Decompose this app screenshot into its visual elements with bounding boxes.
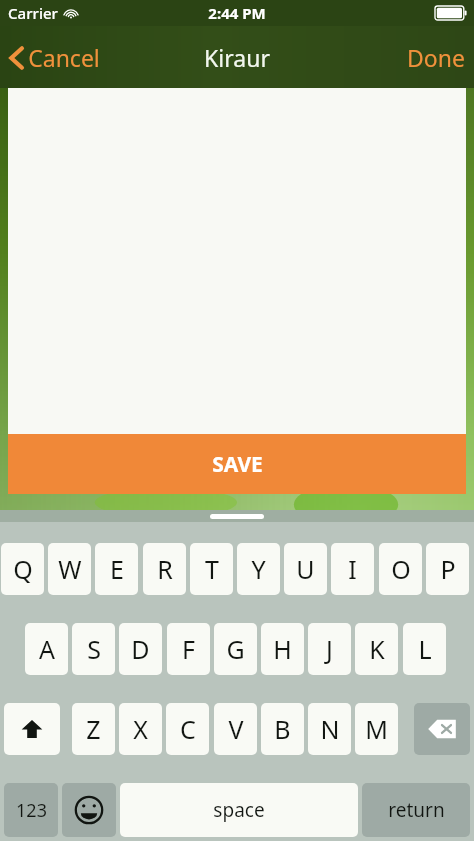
button[interactable]: M [355, 703, 398, 755]
staticText: Done [407, 42, 465, 73]
staticText: H [273, 632, 292, 666]
staticText: Cancel [28, 42, 100, 73]
staticText: D [131, 632, 150, 666]
staticText: Z [86, 712, 101, 746]
button[interactable]: Shift [4, 703, 60, 755]
staticText: X [133, 712, 148, 746]
button[interactable]: F [167, 623, 210, 675]
button[interactable]: O [379, 543, 422, 595]
button[interactable]: space [120, 783, 358, 837]
button[interactable]: G [214, 623, 257, 675]
staticText: P [440, 552, 456, 586]
button[interactable]: N [308, 703, 351, 755]
button[interactable]: S [72, 623, 115, 675]
button[interactable]: Done [398, 35, 474, 80]
button[interactable]: T [190, 543, 233, 595]
staticText: U [296, 552, 315, 586]
button[interactable]: Emoji keyboard [62, 783, 116, 837]
staticText: W [58, 552, 82, 586]
button[interactable]: X [119, 703, 162, 755]
button[interactable]: A [25, 623, 68, 675]
staticText: Carrier [8, 3, 58, 23]
other: Resize keyboard [210, 514, 264, 519]
staticText: return [388, 797, 445, 823]
staticText: S [87, 632, 101, 666]
button[interactable]: U [284, 543, 327, 595]
button[interactable]: Q [1, 543, 44, 595]
staticText: I [348, 552, 357, 586]
staticText: Y [251, 552, 266, 586]
staticText: M [365, 712, 388, 746]
button[interactable]: Y [237, 543, 280, 595]
staticText: T [205, 552, 219, 586]
button[interactable]: J [308, 623, 351, 675]
button[interactable]: V [214, 703, 257, 755]
button[interactable]: Z [72, 703, 115, 755]
staticText: R [157, 552, 173, 586]
staticText: N [320, 712, 340, 746]
button[interactable]: D [119, 623, 162, 675]
button[interactable]: SAVE [8, 434, 466, 494]
button[interactable]: W [48, 543, 91, 595]
staticText: F [182, 632, 195, 666]
button[interactable]: return [362, 783, 470, 837]
button[interactable]: L [403, 623, 446, 675]
button[interactable]: K [355, 623, 398, 675]
staticText: L [418, 632, 432, 666]
staticText: K [369, 632, 385, 666]
button[interactable]: R [143, 543, 186, 595]
staticText: O [391, 552, 411, 586]
button[interactable]: I [331, 543, 374, 595]
staticText: B [274, 712, 291, 746]
staticText: C [180, 712, 196, 746]
staticText: A [39, 632, 55, 666]
staticText: Kiraur [204, 42, 270, 73]
staticText: 2:44 PM [208, 3, 266, 23]
staticText: E [110, 552, 124, 586]
staticText: space [213, 797, 265, 823]
staticText: SAVE [212, 450, 263, 479]
staticText: J [326, 632, 333, 666]
button[interactable]: P [426, 543, 469, 595]
staticText: 123 [16, 798, 47, 823]
button[interactable]: Backspace [414, 703, 470, 755]
button[interactable]: E [95, 543, 138, 595]
button[interactable]: C [166, 703, 209, 755]
button[interactable]: H [261, 623, 304, 675]
staticText: G [226, 632, 245, 666]
button[interactable]: 123 [4, 783, 58, 837]
staticText: Q [13, 552, 33, 586]
button[interactable]: B [261, 703, 304, 755]
staticText: V [228, 712, 244, 746]
button[interactable]: Cancel [0, 36, 110, 79]
